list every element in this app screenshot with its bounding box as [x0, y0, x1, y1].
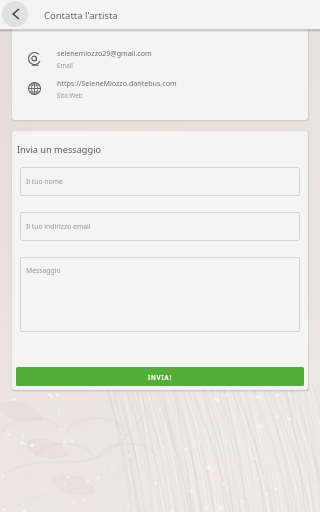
button[interactable]: https://SeleneMiozzo.dantebus.com — [12, 78, 308, 99]
button[interactable]: Back — [2, 1, 28, 27]
button[interactable]: selenemiozzo29@gmail.com — [12, 48, 308, 69]
staticText: Il tuo indirizzo email — [26, 222, 91, 231]
staticText: Messaggio — [26, 266, 61, 275]
button[interactable]: INVIA! — [16, 367, 304, 386]
staticText: https://SeleneMiozzo.dantebus.com — [57, 78, 177, 88]
button[interactable]: Messaggio — [20, 257, 300, 332]
staticText: Il tuo nome — [26, 177, 63, 186]
button[interactable]: Il tuo nome — [20, 167, 300, 196]
staticText: Invia un messaggio — [17, 143, 102, 156]
staticText: Sito Web — [57, 91, 83, 99]
button[interactable]: Il tuo indirizzo email — [20, 212, 300, 241]
staticText: INVIA! — [148, 373, 173, 381]
staticText: selenemiozzo29@gmail.com — [57, 48, 152, 58]
staticText: Contatta l'artista — [44, 9, 118, 22]
staticText: Email — [57, 61, 73, 69]
